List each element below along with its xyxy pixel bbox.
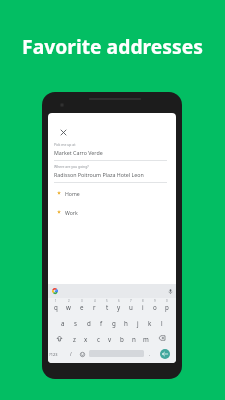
staticText: a xyxy=(61,319,65,327)
button[interactable]: x xyxy=(80,330,92,346)
staticText: Where are you going? xyxy=(54,164,89,169)
staticText: 5 xyxy=(106,299,108,303)
button[interactable]: j xyxy=(132,314,144,330)
staticText: n xyxy=(132,335,136,343)
button[interactable]: / xyxy=(66,346,76,362)
staticText: v xyxy=(108,335,112,343)
button[interactable]: 3 xyxy=(75,298,88,314)
button[interactable]: Home xyxy=(48,186,176,200)
staticText: Market Carro Verde xyxy=(54,149,103,156)
button[interactable]: Work xyxy=(48,205,176,219)
button[interactable]: Emoji xyxy=(77,346,87,362)
staticText: Favorite addresses xyxy=(0,33,225,59)
button[interactable]: 7 xyxy=(125,298,137,314)
button[interactable]: Pick me up at xyxy=(48,142,176,161)
button[interactable]: n xyxy=(128,330,140,346)
staticText: u xyxy=(129,303,133,311)
button[interactable]: m xyxy=(140,330,152,346)
staticText: f xyxy=(100,319,103,327)
staticText: t xyxy=(106,303,109,311)
staticText: m xyxy=(143,335,149,343)
button[interactable]: 8 xyxy=(137,298,149,314)
button[interactable]: Backspace xyxy=(155,330,168,346)
button[interactable]: 4 xyxy=(88,298,101,314)
button[interactable]: Close xyxy=(56,125,70,139)
button[interactable]: ?123 xyxy=(48,346,59,362)
staticText: h xyxy=(124,319,128,327)
button[interactable]: z xyxy=(68,330,80,346)
staticText: c xyxy=(97,335,100,343)
button[interactable]: h xyxy=(120,314,132,330)
button[interactable]: l xyxy=(156,314,168,330)
staticText: 4 xyxy=(94,299,96,303)
staticText: / xyxy=(70,351,72,357)
staticText: q xyxy=(54,303,58,311)
staticText: s xyxy=(74,319,77,327)
staticText: p xyxy=(165,303,169,311)
staticText: k xyxy=(148,319,152,327)
button[interactable]: b xyxy=(116,330,128,346)
button[interactable]: k xyxy=(144,314,156,330)
button[interactable]: Enter xyxy=(155,346,175,362)
button[interactable]: 0 xyxy=(161,298,173,314)
button[interactable]: v xyxy=(104,330,116,346)
staticText: 2 xyxy=(68,299,70,303)
staticText: 3 xyxy=(81,299,83,303)
staticText: 8 xyxy=(142,299,144,303)
staticText: 1 xyxy=(55,299,57,303)
staticText: ?123 xyxy=(49,352,58,357)
button[interactable]: 1 xyxy=(49,298,62,314)
button[interactable]: d xyxy=(82,314,95,330)
staticText: o xyxy=(153,303,157,311)
button[interactable]: g xyxy=(108,314,120,330)
button[interactable]: a xyxy=(56,314,69,330)
staticText: d xyxy=(87,319,91,327)
staticText: 9 xyxy=(154,299,156,303)
button[interactable]: 6 xyxy=(113,298,125,314)
staticText: Pick me up at xyxy=(54,142,76,147)
staticText: 6 xyxy=(118,299,120,303)
staticText: Radisson Poitroum Plaza Hotel Leon xyxy=(54,171,144,178)
button[interactable]: Where are you going? xyxy=(48,164,176,183)
staticText: z xyxy=(73,335,76,343)
staticText: b xyxy=(120,335,124,343)
staticText: l xyxy=(161,319,163,327)
staticText: . xyxy=(149,351,151,357)
staticText: y xyxy=(117,303,121,311)
staticText: Work xyxy=(65,209,78,216)
staticText: w xyxy=(66,303,71,311)
staticText: r xyxy=(93,303,96,311)
staticText: j xyxy=(137,319,139,327)
button[interactable]: c xyxy=(92,330,104,346)
staticText: x xyxy=(84,335,88,343)
staticText: g xyxy=(112,319,116,327)
staticText: Home xyxy=(65,190,80,197)
staticText: 0 xyxy=(166,299,168,303)
button[interactable]: Shift xyxy=(53,330,66,346)
staticText: i xyxy=(142,303,144,311)
button[interactable]: 9 xyxy=(149,298,161,314)
staticText: e xyxy=(80,303,84,311)
staticText: 7 xyxy=(130,299,132,303)
button[interactable]: s xyxy=(69,314,82,330)
button[interactable]: 5 xyxy=(101,298,113,314)
button[interactable]: 2 xyxy=(62,298,75,314)
button[interactable]: f xyxy=(95,314,108,330)
button[interactable]: . xyxy=(145,346,154,362)
